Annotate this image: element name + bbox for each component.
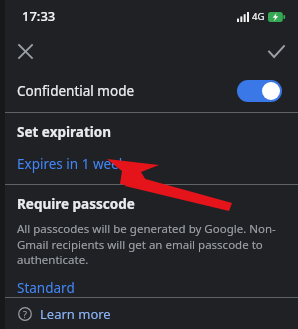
button[interactable]: Close [8,34,42,68]
button[interactable]: Confidential mode [0,70,298,112]
staticText: Learn more [40,305,111,323]
staticText: 17:33 [22,7,56,25]
staticText: All passcodes will be generated by Googl… [17,221,285,267]
staticText: ? [23,308,27,320]
staticText: Set expiration [17,123,111,141]
button[interactable]: ? [0,298,298,329]
staticText: Expires in 1 week [17,155,126,173]
button[interactable]: Done [259,34,293,68]
button[interactable]: Standard [17,279,75,297]
staticText: 4G [252,10,265,23]
staticText: Standard [17,279,75,297]
staticText: Confidential mode [17,82,135,100]
staticText: Require passcode [17,195,135,213]
button[interactable]: Expires in 1 week [17,155,126,173]
